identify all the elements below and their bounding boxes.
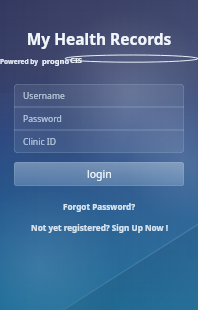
button[interactable]: Password bbox=[14, 107, 184, 130]
staticText: Password bbox=[23, 113, 62, 125]
staticText: CIS bbox=[70, 55, 83, 65]
button[interactable]: Username bbox=[14, 84, 184, 107]
staticText: Username bbox=[23, 90, 65, 102]
button[interactable]: Clinic ID bbox=[14, 130, 184, 153]
button[interactable]: Forgot Password? bbox=[0, 199, 198, 213]
button[interactable]: login bbox=[14, 162, 184, 186]
staticText: My Health Records bbox=[0, 28, 198, 49]
staticText: progno bbox=[42, 56, 70, 66]
button[interactable]: Not yet registered? Sign Up Now ! bbox=[0, 220, 198, 234]
staticText: Not yet registered? Sign Up Now ! bbox=[31, 222, 168, 233]
staticText: login bbox=[87, 167, 112, 181]
staticText: Forgot Password? bbox=[63, 201, 136, 212]
other: prognoCIS logo bbox=[42, 55, 198, 67]
staticText: Clinic ID bbox=[23, 136, 56, 148]
staticText: Powered by bbox=[0, 57, 39, 66]
